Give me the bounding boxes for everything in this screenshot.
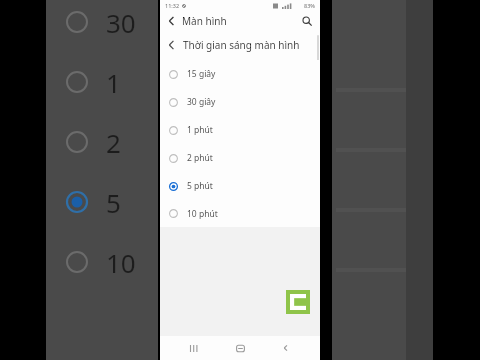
staticText: 10 phút xyxy=(187,208,218,220)
staticText: 30 xyxy=(106,5,136,40)
staticText: 30 giây xyxy=(187,96,216,108)
staticText: 10 xyxy=(106,245,136,280)
staticText: 5 xyxy=(106,185,121,220)
button[interactable]: 15 giây xyxy=(160,60,320,88)
button[interactable]: Recent apps xyxy=(182,336,206,360)
button[interactable]: Back xyxy=(274,336,298,360)
staticText: 2 phút xyxy=(187,152,213,164)
staticText: 1 xyxy=(106,65,121,100)
button[interactable]: 10 phút xyxy=(160,200,320,227)
staticText: 5 phút xyxy=(187,180,213,192)
staticText: Màn hình xyxy=(182,14,227,28)
button[interactable]: 2 phút xyxy=(160,144,320,172)
button[interactable]: 5 phút xyxy=(160,172,320,200)
button[interactable]: 30 giây xyxy=(160,88,320,116)
staticText: 15 giây xyxy=(187,68,216,80)
staticText: Thời gian sáng màn hình xyxy=(183,38,300,52)
staticText: 2 xyxy=(106,125,121,160)
button[interactable]: Back xyxy=(165,14,179,28)
button[interactable]: Home xyxy=(228,336,252,360)
button[interactable]: Search xyxy=(300,14,314,28)
staticText: 11:32 xyxy=(165,2,180,9)
staticText: 1 phút xyxy=(187,124,213,136)
button[interactable]: Navigate up xyxy=(165,38,179,52)
staticText: 83% xyxy=(304,2,315,9)
button[interactable]: 1 phút xyxy=(160,116,320,144)
